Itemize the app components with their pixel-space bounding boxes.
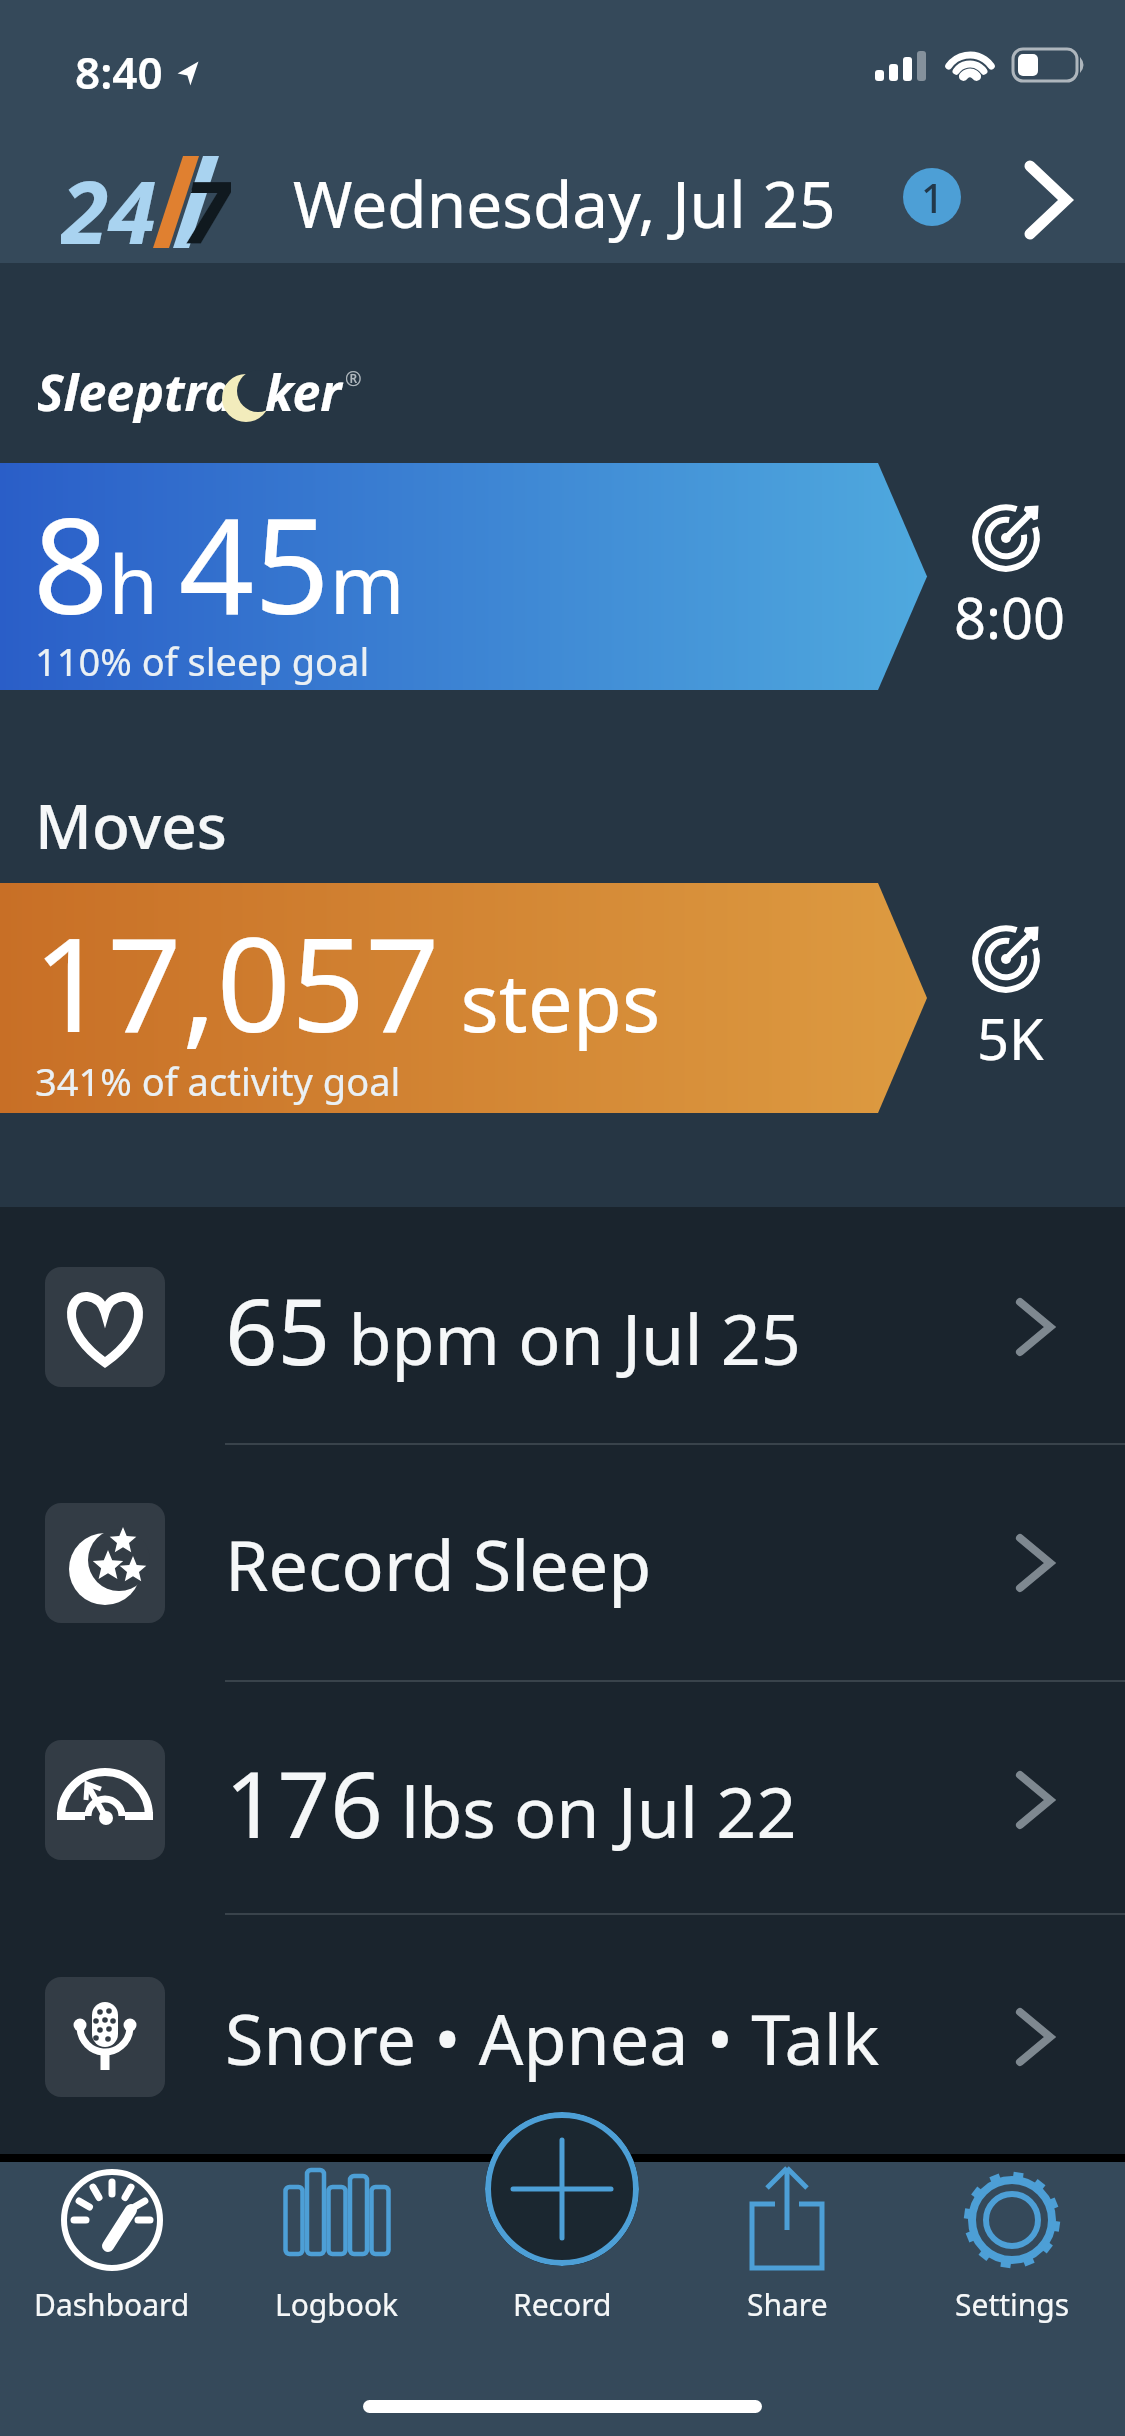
button[interactable]: 1 [903, 168, 961, 226]
staticText: 17,057 steps [33, 893, 661, 1070]
staticText: Snore • Apnea • Talk [225, 1990, 880, 2085]
staticText: Share [747, 2284, 828, 2325]
button[interactable]: 24 [61, 152, 246, 252]
staticText: Record Sleep [225, 1516, 652, 1611]
staticText: ® [345, 365, 362, 392]
staticText: 5K [977, 1000, 1044, 1076]
staticText: Dashboard [34, 2284, 190, 2325]
button[interactable]: 5K [945, 920, 1075, 1076]
button[interactable]: Logbook [252, 2168, 422, 2325]
button[interactable]: 176 lbs on Jul 22 [0, 1740, 1125, 1860]
staticText: 341% of activity goal [35, 1055, 401, 1107]
button[interactable]: Dashboard [27, 2168, 197, 2325]
button[interactable]: Record Sleep [0, 1503, 1125, 1623]
button[interactable]: 8h 45m [0, 463, 1125, 690]
staticText: Sleeptra [37, 358, 235, 426]
staticText: 65 bpm on Jul 25 [225, 1267, 801, 1387]
staticText: Record [513, 2284, 612, 2325]
button[interactable]: Share [702, 2168, 872, 2325]
staticText: ker [265, 358, 342, 426]
staticText: 110% of sleep goal [35, 635, 370, 687]
staticText: Logbook [275, 2284, 399, 2325]
staticText: 1 [921, 170, 944, 224]
staticText: 7 [183, 152, 231, 252]
staticText: 176 lbs on Jul 22 [225, 1740, 797, 1860]
staticText: Settings [955, 2284, 1070, 2325]
button[interactable] [485, 2112, 639, 2266]
staticText: 8h 45m [33, 473, 405, 653]
staticText: 24 [61, 152, 156, 252]
staticText: 8:40 [75, 42, 163, 102]
button[interactable]: Settings [927, 2168, 1097, 2325]
button[interactable] [1022, 160, 1072, 240]
button[interactable]: 65 bpm on Jul 25 [0, 1267, 1125, 1387]
button[interactable]: Snore • Apnea • Talk [0, 1977, 1125, 2097]
staticText: Wednesday, Jul 25 [293, 160, 836, 247]
button[interactable]: 17,057 steps [0, 883, 1125, 1113]
staticText: Moves [35, 783, 227, 867]
button[interactable]: 8:00 [945, 499, 1075, 655]
staticText: 8:00 [954, 579, 1066, 655]
